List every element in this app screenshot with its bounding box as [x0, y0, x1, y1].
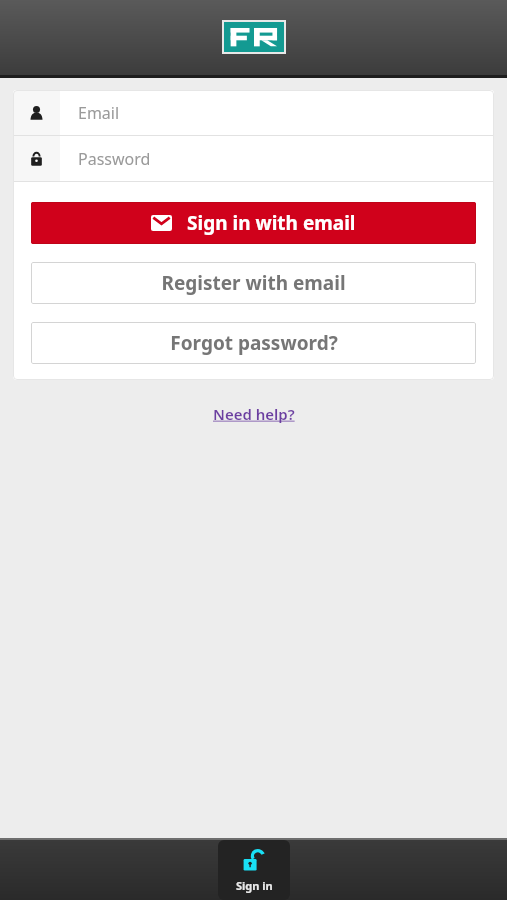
staticText: Email: [78, 102, 120, 124]
button[interactable]: Register with email: [31, 262, 476, 304]
button[interactable]: Forgot password?: [31, 322, 476, 364]
button[interactable]: Sign in: [218, 840, 290, 900]
button[interactable]: Password: [13, 136, 494, 181]
staticText: Sign in with email: [187, 210, 356, 236]
button[interactable]: Need help?: [205, 400, 303, 428]
staticText: Register with email: [161, 270, 346, 296]
staticText: Password: [78, 148, 151, 170]
staticText: Sign in: [236, 878, 273, 893]
button[interactable]: Sign in with email: [31, 202, 476, 244]
staticText: Forgot password?: [170, 330, 338, 356]
button[interactable]: Email: [13, 90, 494, 135]
staticText: Need help?: [213, 404, 295, 424]
